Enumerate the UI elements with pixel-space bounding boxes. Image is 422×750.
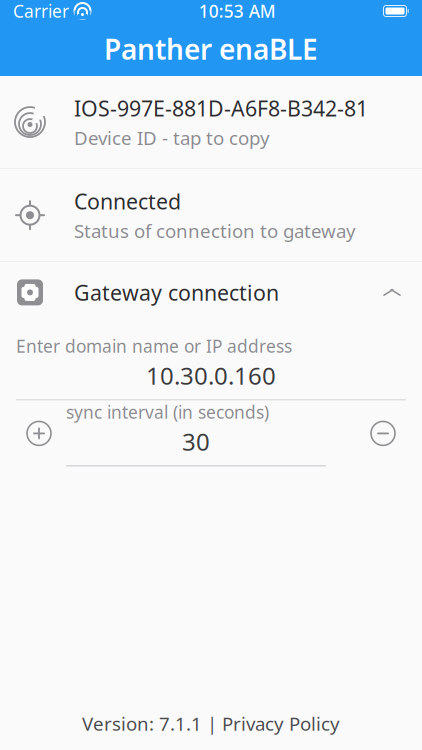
staticText: 10:53 AM bbox=[199, 0, 276, 22]
button[interactable]: Privacy Policy bbox=[222, 711, 340, 736]
button[interactable]: Domain name or IP address, 10.30.0.160 bbox=[0, 358, 422, 399]
staticText: sync interval (in seconds) bbox=[66, 400, 269, 423]
staticText: IOS-997E-881D-A6F8-B342-81 bbox=[74, 94, 368, 122]
staticText: Panther enaBLE bbox=[104, 30, 318, 68]
staticText: 30 bbox=[182, 425, 210, 457]
staticText: Enter domain name or IP address bbox=[16, 335, 292, 358]
staticText: Privacy Policy bbox=[222, 711, 340, 736]
staticText: Carrier bbox=[13, 0, 69, 22]
button[interactable]: Gateway connection, collapse section bbox=[0, 262, 422, 322]
button[interactable]: Connection status bbox=[0, 169, 422, 261]
staticText: Device ID - tap to copy bbox=[74, 125, 270, 150]
button[interactable]: Device ID, tap to copy bbox=[0, 76, 422, 168]
button[interactable]: Increase sync interval bbox=[0, 404, 66, 462]
button[interactable]: Decrease sync interval bbox=[356, 404, 422, 462]
staticText: Status of connection to gateway bbox=[74, 218, 356, 243]
staticText: Connected bbox=[74, 187, 181, 215]
staticText: 10.30.0.160 bbox=[146, 360, 276, 391]
staticText: Version: 7.1.1 | bbox=[82, 711, 222, 736]
staticText: Gateway connection bbox=[74, 278, 279, 306]
